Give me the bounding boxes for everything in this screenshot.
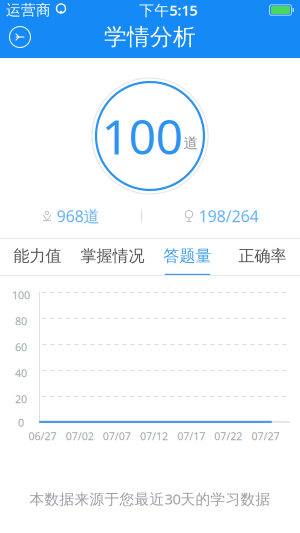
button[interactable]: 返回 [0, 20, 40, 54]
staticText: 07/27 [251, 429, 279, 443]
staticText: 能力值 [13, 246, 61, 266]
staticText: 正确率 [238, 246, 286, 266]
staticText: 07/22 [214, 429, 242, 443]
staticText: 968道 [56, 205, 99, 227]
staticText: 运营商 [6, 1, 51, 19]
staticText: 0 [18, 415, 24, 430]
staticText: 80 [15, 314, 27, 328]
button[interactable]: 能力值 [0, 239, 75, 275]
staticText: 07/12 [140, 429, 168, 443]
button[interactable]: 掌握情况 [75, 239, 150, 275]
staticText: 道 [183, 134, 198, 152]
staticText: 60 [15, 340, 27, 354]
staticText: 198/264 [198, 205, 258, 227]
staticText: 学情分析 [104, 23, 196, 51]
staticText: 100 [12, 288, 30, 302]
staticText: 07/02 [66, 429, 94, 443]
staticText: 06/27 [29, 429, 57, 443]
button[interactable]: 答题量 [150, 239, 225, 275]
staticText: 100 [101, 104, 182, 168]
staticText: 掌握情况 [80, 246, 144, 266]
staticText: 下午5:15 [139, 0, 197, 20]
staticText: 07/07 [103, 429, 131, 443]
staticText: 40 [15, 366, 27, 380]
button[interactable]: 正确率 [225, 239, 300, 275]
staticText: 20 [15, 392, 27, 406]
staticText: 本数据来源于您最近30天的学习数据 [29, 489, 270, 508]
staticText: 07/17 [177, 429, 205, 443]
staticText: 答题量 [163, 246, 211, 266]
